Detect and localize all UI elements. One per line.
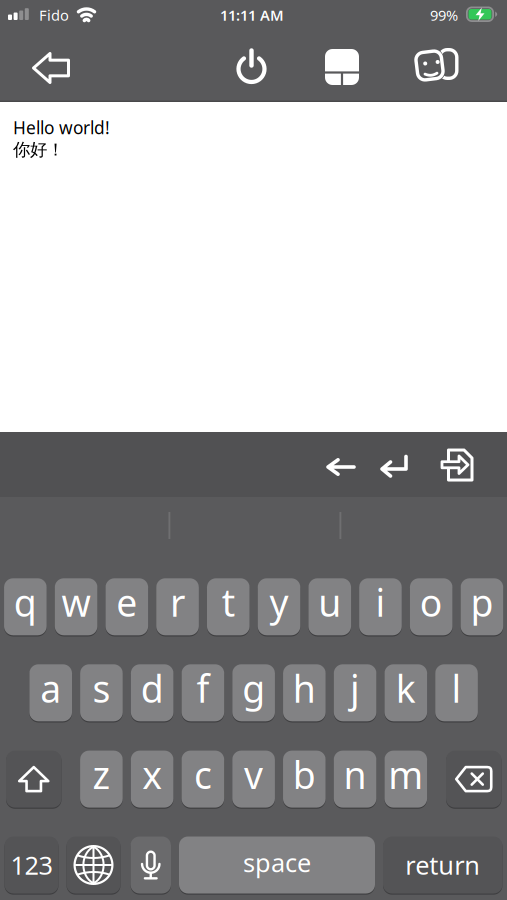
button[interactable]: r — [156, 578, 199, 635]
button[interactable]: m — [384, 751, 427, 808]
staticText: y — [269, 577, 288, 627]
staticText: m — [388, 750, 423, 799]
staticText: r — [170, 577, 185, 627]
staticText: s — [92, 663, 110, 713]
staticText: x — [142, 750, 162, 799]
staticText: d — [141, 663, 164, 713]
button[interactable]: n — [334, 751, 376, 808]
staticText: t — [222, 577, 235, 627]
staticText: f — [196, 663, 209, 713]
button[interactable]: w — [55, 578, 97, 635]
button[interactable] — [440, 448, 473, 481]
button[interactable]: c — [182, 751, 224, 808]
staticText: l — [452, 663, 462, 713]
staticText: k — [396, 663, 416, 713]
staticText: 123 — [10, 848, 52, 882]
staticText: o — [420, 577, 443, 627]
button[interactable]: h — [283, 664, 326, 721]
button[interactable]: k — [384, 664, 427, 721]
button[interactable]: b — [283, 751, 326, 808]
button[interactable] — [446, 751, 501, 808]
staticText: g — [242, 663, 265, 713]
staticText: q — [14, 577, 37, 627]
button[interactable]: y — [258, 578, 300, 635]
staticText: b — [293, 750, 316, 799]
staticText: space — [243, 846, 311, 879]
button[interactable]: 123 — [4, 836, 58, 893]
button[interactable]: f — [182, 664, 224, 721]
staticText: w — [62, 577, 91, 627]
staticText: v — [244, 750, 263, 799]
button[interactable]: s — [80, 664, 123, 721]
staticText: c — [194, 750, 212, 799]
staticText: h — [293, 663, 316, 713]
staticText: 你好！ — [13, 139, 64, 160]
button[interactable]: p — [461, 578, 503, 635]
button[interactable]: g — [232, 664, 275, 721]
button[interactable] — [380, 455, 408, 477]
staticText: i — [375, 577, 385, 627]
staticText: Hello world! — [13, 116, 110, 139]
button[interactable]: l — [435, 664, 478, 721]
button[interactable]: t — [207, 578, 250, 635]
button[interactable]: x — [131, 751, 173, 808]
button[interactable]: z — [80, 751, 123, 808]
button[interactable]: q — [4, 578, 47, 635]
button[interactable] — [414, 48, 461, 83]
button[interactable]: o — [410, 578, 452, 635]
button[interactable] — [6, 751, 61, 808]
staticText: 11:11 AM — [220, 5, 284, 25]
staticText: 99% — [430, 5, 458, 25]
button[interactable] — [32, 52, 70, 84]
staticText: return — [405, 848, 480, 882]
button[interactable]: j — [334, 664, 376, 721]
button[interactable]: e — [105, 578, 148, 635]
button[interactable] — [325, 49, 359, 85]
staticText: j — [350, 663, 360, 713]
button[interactable] — [66, 836, 120, 893]
staticText: e — [116, 577, 137, 627]
button[interactable]: u — [308, 578, 351, 635]
button[interactable] — [326, 458, 356, 476]
staticText: p — [470, 577, 493, 627]
button[interactable]: d — [131, 664, 173, 721]
button[interactable] — [233, 48, 269, 84]
button[interactable]: v — [232, 751, 275, 808]
staticText: Fido — [39, 5, 69, 25]
staticText: n — [344, 750, 367, 799]
staticText: z — [92, 750, 110, 799]
button[interactable] — [130, 836, 171, 893]
button[interactable]: a — [29, 664, 72, 721]
button[interactable]: i — [359, 578, 402, 635]
staticText: a — [40, 663, 61, 713]
staticText: u — [318, 577, 341, 627]
button[interactable]: return — [383, 836, 502, 893]
button[interactable]: space — [179, 836, 375, 893]
